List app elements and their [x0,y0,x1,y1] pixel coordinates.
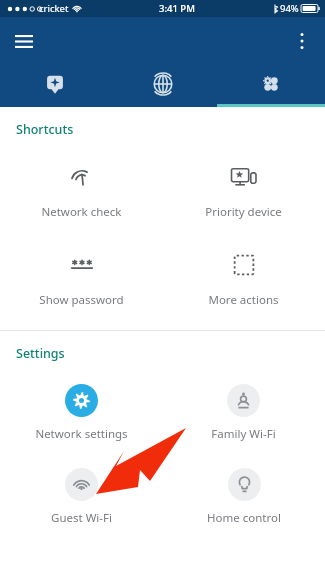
staticText: Priority device [205,204,282,220]
button[interactable]: Show password [33,250,130,310]
button[interactable]: Network settings [29,382,134,444]
staticText: Home control [207,510,281,526]
button[interactable]: Priority device [199,162,288,222]
staticText: 94% [280,2,299,15]
staticText: 3:41 PM [159,2,195,15]
staticText: Shortcuts [16,121,74,138]
button[interactable]: More options [287,26,317,56]
button[interactable]: Network tab [109,64,217,107]
button[interactable]: Open navigation menu [8,25,40,57]
staticText: Guest Wi-Fi [51,510,112,526]
staticText: Show password [39,292,124,308]
staticText: cricket [39,2,69,15]
staticText: Network check [41,204,122,220]
staticText: Family Wi-Fi [211,426,276,442]
button[interactable]: Guest Wi-Fi [45,466,118,528]
button[interactable]: Home control [201,466,287,528]
button[interactable]: More actions [202,250,285,310]
staticText: More actions [208,292,279,308]
button[interactable]: Assistant tab [0,64,109,107]
staticText: Settings [16,345,65,362]
staticText: Network settings [35,426,128,442]
button[interactable]: Shortcuts and settings tab [217,64,325,107]
button[interactable]: Network check [35,162,128,222]
button[interactable]: Family Wi-Fi [205,382,282,444]
